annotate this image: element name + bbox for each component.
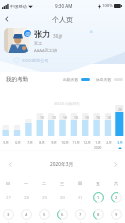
staticText: 8 [97,212,100,218]
staticText: 12月 [83,140,91,145]
staticText: 个人页 [52,15,73,24]
staticText: AAAA瓦工班 [34,48,58,54]
staticText: 二 [42,181,47,186]
staticText: 张力 [34,29,50,39]
staticText: 100% [102,3,113,9]
staticText: 7 [79,212,82,218]
staticText: 出勤天数 [63,77,79,82]
button[interactable]: Avatar [4,28,29,53]
staticText: 20 [118,107,122,112]
button[interactable]: 29 [35,189,53,206]
staticText: 2 [115,195,118,201]
staticText: 10月 [61,140,69,145]
staticText: 8月 [39,140,45,145]
staticText: 5月 [3,140,9,145]
staticText: 29 [42,195,47,201]
button[interactable]: 8 [89,206,107,223]
staticText: 18 [85,115,89,120]
staticText: 18 [74,115,78,120]
staticText: 六 [114,181,119,186]
staticText: 三 [60,181,65,186]
staticText: 中国移动 [10,4,27,9]
button[interactable]: 休息天数 [96,77,123,82]
button[interactable]: 3 [0,206,17,223]
staticText: 11月 [72,140,80,145]
staticText: 四 [78,181,83,186]
button[interactable]: 28 [17,189,35,206]
staticText: 一 [24,181,29,186]
staticText: 休息天数 [96,77,112,82]
staticText: 我的考勤 [6,76,29,83]
staticText: 9:30 AM [55,3,73,9]
button[interactable]: 5 [35,206,53,223]
staticText: 31 [78,195,83,201]
button[interactable]: 30 [53,189,71,206]
staticText: 1 [97,195,100,201]
staticText: 9 [115,212,118,218]
staticText: 6 [61,212,64,218]
staticText: 瓦工 [34,41,43,46]
button[interactable]: Next month [109,158,121,170]
staticText: 2020 [94,146,102,150]
button[interactable]: 6 [53,206,71,223]
button[interactable]: 出勤天数 [63,77,90,82]
staticText: 2020年3月 [50,161,74,168]
staticText: 18 [107,115,111,120]
button[interactable]: Previous month [4,158,16,170]
button[interactable]: 1 [89,189,107,206]
staticText: 18 [63,115,67,120]
button[interactable]: 31 [71,189,89,206]
staticText: 10 [52,115,56,120]
staticText: 9月 [51,140,57,145]
staticText: XXXX建筑公司 [22,58,49,64]
staticText: 1月 [95,140,101,145]
staticText: 6月 [15,140,21,145]
button[interactable]: 27 [0,189,17,206]
staticText: 五 [96,181,101,186]
button[interactable]: 9 [107,206,125,223]
staticText: 3月2日 出勤18天 [54,101,80,106]
staticText: 10 [40,115,44,120]
button[interactable]: 2 [107,189,125,206]
staticText: 3月 [117,140,123,145]
staticText: 30岁 [53,33,63,39]
staticText: 27 [6,195,11,201]
staticText: 18 [96,115,100,120]
staticText: 2月 [106,140,112,145]
button[interactable]: 7 [71,206,89,223]
staticText: 日 [6,181,11,186]
staticText: 4 [25,212,28,218]
staticText: 3 [7,212,10,218]
button[interactable]: 4 [17,206,35,223]
staticText: 5 [43,212,46,218]
staticText: 30 [60,195,65,201]
staticText: 7月 [27,140,33,145]
button[interactable]: Back [0,12,14,26]
staticText: 28 [24,195,29,201]
